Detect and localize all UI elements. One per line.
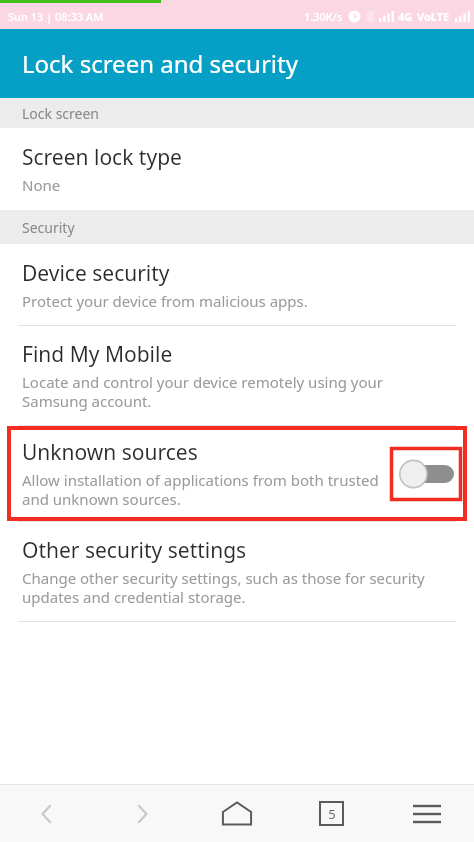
staticText: None bbox=[22, 175, 61, 195]
staticText: 5 bbox=[328, 805, 336, 823]
button[interactable]: Back bbox=[0, 785, 94, 842]
staticText: Device security bbox=[22, 259, 170, 288]
staticText: Screen lock type bbox=[22, 143, 182, 172]
button[interactable]: Recent apps, 5 open bbox=[284, 785, 379, 842]
staticText: Locate and control your device remotely … bbox=[22, 372, 384, 411]
staticText: Allow installation of applications from … bbox=[22, 470, 379, 509]
staticText: Sun 13 | 08:33 AM bbox=[8, 9, 104, 24]
button[interactable]: Other security settings bbox=[0, 522, 474, 621]
button[interactable]: Unknown sources bbox=[0, 426, 474, 521]
staticText: 1.30K/s bbox=[304, 9, 343, 24]
button[interactable]: Device security bbox=[0, 244, 474, 325]
button[interactable]: Unknown sources switch, off bbox=[390, 447, 462, 501]
button[interactable]: Screen lock type bbox=[0, 128, 474, 210]
staticText: Security bbox=[22, 218, 75, 237]
staticText: Find My Mobile bbox=[22, 340, 173, 369]
staticText: 4G bbox=[398, 9, 413, 24]
button[interactable]: Menu bbox=[379, 785, 474, 842]
staticText: Unknown sources bbox=[22, 438, 198, 467]
staticText: VoLTE bbox=[417, 9, 450, 24]
staticText: Lock screen and security bbox=[22, 47, 298, 80]
button[interactable]: Home bbox=[189, 785, 284, 842]
staticText: Protect your device from malicious apps. bbox=[22, 291, 308, 311]
staticText: Change other security settings, such as … bbox=[22, 568, 425, 607]
button[interactable]: Forward bbox=[94, 785, 189, 842]
button[interactable]: Find My Mobile bbox=[0, 326, 474, 425]
staticText: Lock screen bbox=[22, 104, 100, 123]
staticText: Other security settings bbox=[22, 536, 247, 565]
